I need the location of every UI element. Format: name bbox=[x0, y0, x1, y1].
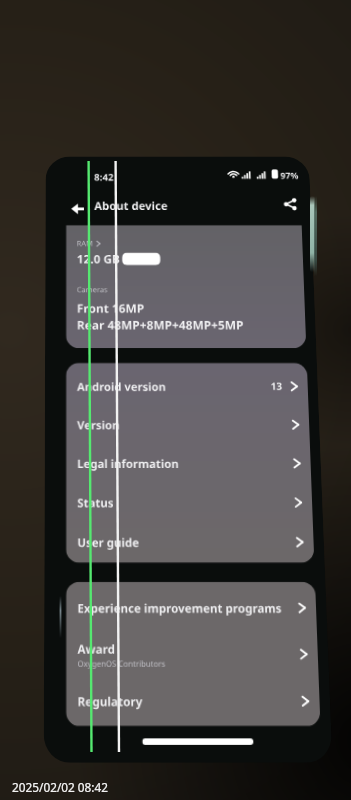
staticText: Experience improvement programs bbox=[77, 600, 282, 616]
staticText: Android version bbox=[77, 379, 166, 394]
button[interactable]: Regulatory bbox=[66, 678, 320, 725]
staticText: Version bbox=[77, 417, 120, 432]
staticText: 13 bbox=[270, 379, 283, 393]
staticText: 8:42 bbox=[94, 170, 114, 183]
button[interactable]: User guide bbox=[66, 522, 314, 562]
staticText: Status bbox=[77, 495, 114, 510]
button[interactable]: Legal information bbox=[66, 443, 311, 482]
staticText: 97% bbox=[280, 169, 299, 181]
staticText: OxygenOS Contributors bbox=[77, 658, 165, 669]
staticText: 2025/02/02 08:42 bbox=[12, 779, 108, 795]
button[interactable]: Back bbox=[66, 198, 89, 220]
staticText: About device bbox=[94, 198, 168, 214]
button[interactable]: RAM bbox=[77, 238, 100, 248]
staticText: Rear 48MP+8MP+48MP+5MP bbox=[77, 317, 244, 332]
button[interactable]: Android version bbox=[66, 367, 308, 405]
button[interactable]: Experience improvement programs bbox=[66, 585, 317, 631]
staticText: Legal information bbox=[77, 456, 179, 471]
staticText: Cameras bbox=[77, 284, 108, 294]
staticText: Regulatory bbox=[78, 693, 143, 709]
staticText: Front 16MP bbox=[77, 300, 144, 316]
button[interactable]: Status bbox=[66, 482, 313, 522]
staticText: 12.0 GB bbox=[77, 251, 120, 266]
button[interactable]: Award bbox=[66, 631, 319, 678]
staticText: User guide bbox=[77, 534, 140, 550]
staticText: RAM bbox=[77, 238, 93, 248]
staticText: Award bbox=[77, 641, 115, 657]
button[interactable]: Share bbox=[277, 192, 303, 216]
button[interactable]: Version bbox=[66, 405, 310, 443]
